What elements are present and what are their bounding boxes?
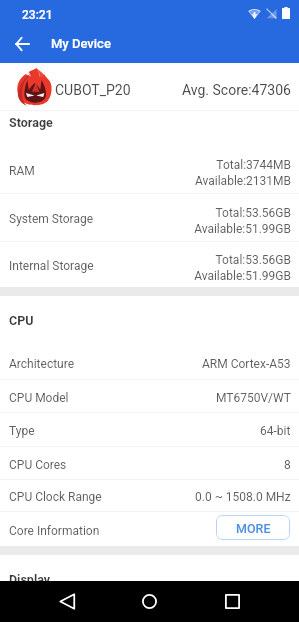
button[interactable]: Home bbox=[126, 581, 173, 622]
staticText: MORE bbox=[236, 521, 271, 536]
staticText: Total:53.56GB bbox=[215, 253, 291, 267]
staticText: Available:51.99GB bbox=[194, 269, 291, 283]
button[interactable]: Internal Storage bbox=[0, 242, 299, 287]
staticText: Internal Storage bbox=[9, 259, 94, 273]
button[interactable]: Type bbox=[0, 413, 299, 446]
button[interactable]: Recent apps bbox=[209, 581, 256, 622]
button[interactable]: Architecture bbox=[0, 345, 299, 379]
button[interactable]: RAM bbox=[0, 146, 299, 193]
staticText: Storage bbox=[9, 115, 53, 130]
button[interactable]: CPU Cores bbox=[0, 447, 299, 479]
staticText: RAM bbox=[9, 164, 35, 178]
button[interactable]: Back bbox=[44, 581, 91, 622]
staticText: Available:2131MB bbox=[194, 174, 291, 188]
button[interactable]: CUBOT_P20 bbox=[0, 63, 299, 110]
staticText: My Device bbox=[51, 36, 111, 51]
staticText: 8 bbox=[284, 458, 291, 472]
staticText: Available:51.99GB bbox=[194, 222, 291, 236]
staticText: 64-bit bbox=[260, 424, 291, 438]
staticText: Type bbox=[9, 424, 35, 438]
staticText: CPU Cores bbox=[9, 458, 67, 472]
staticText: MT6750V/WT bbox=[216, 391, 291, 405]
button[interactable]: CPU Clock Range bbox=[0, 480, 299, 511]
staticText: 0.0 ~ 1508.0 MHz bbox=[195, 490, 291, 504]
staticText: Architecture bbox=[9, 357, 75, 371]
staticText: CUBOT_P20 bbox=[55, 82, 131, 98]
staticText: 23:21 bbox=[22, 8, 53, 22]
button[interactable]: System Storage bbox=[0, 194, 299, 241]
staticText: Total:3744MB bbox=[216, 158, 291, 172]
button[interactable]: CPU Model bbox=[0, 380, 299, 412]
staticText: CPU Clock Range bbox=[9, 490, 102, 504]
staticText: Core Information bbox=[9, 524, 100, 538]
button[interactable]: MORE bbox=[216, 515, 290, 540]
button[interactable]: Navigate up bbox=[0, 24, 45, 63]
staticText: CPU Model bbox=[9, 391, 69, 405]
staticText: System Storage bbox=[9, 212, 94, 226]
staticText: CPU bbox=[9, 313, 34, 328]
staticText: Display bbox=[9, 572, 51, 587]
staticText: Avg. Score:47306 bbox=[182, 82, 291, 98]
staticText: Total:53.56GB bbox=[215, 206, 291, 220]
staticText: ARM Cortex-A53 bbox=[202, 357, 291, 371]
